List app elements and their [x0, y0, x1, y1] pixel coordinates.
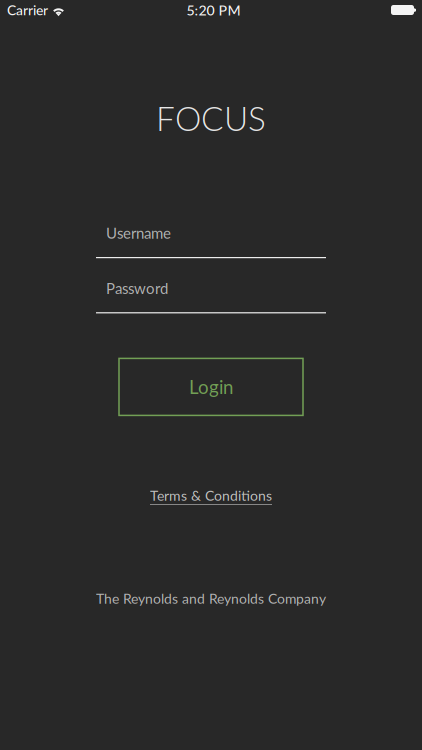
staticText: FOCUS	[156, 98, 266, 138]
button[interactable]: Terms & Conditions	[150, 486, 272, 504]
button[interactable]: Password	[96, 281, 326, 313]
staticText: Carrier	[7, 2, 48, 18]
button[interactable]: Login	[119, 358, 303, 415]
staticText: Terms & Conditions	[150, 487, 272, 504]
staticText: 5:20 PM	[186, 1, 240, 18]
staticText: The Reynolds and Reynolds Company	[96, 590, 326, 607]
staticText: Login	[189, 376, 233, 398]
staticText: Username	[106, 224, 171, 242]
staticText: Password	[106, 279, 168, 297]
button[interactable]: Username	[96, 226, 326, 258]
